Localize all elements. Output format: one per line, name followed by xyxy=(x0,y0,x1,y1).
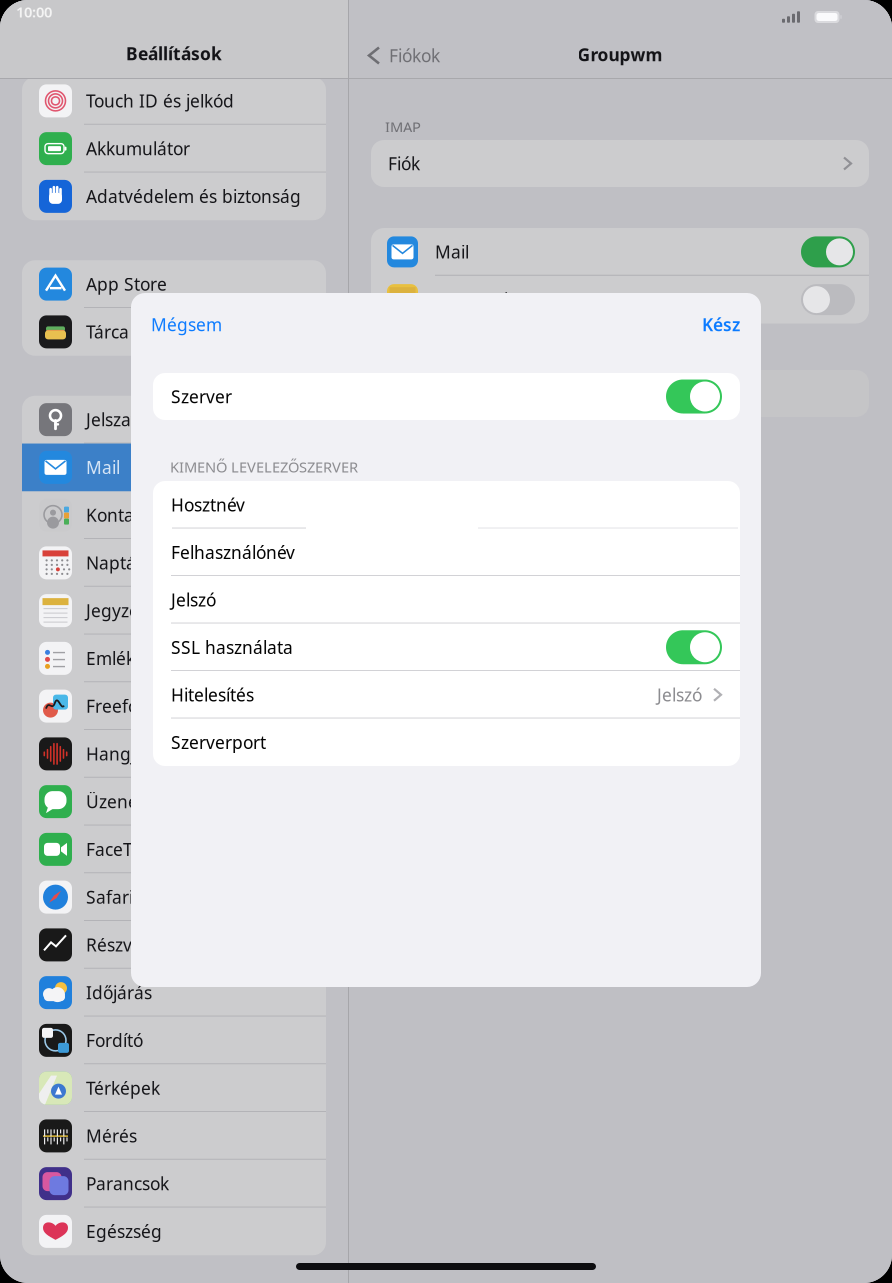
button[interactable]: Emlékeztetők xyxy=(22,634,326,682)
button[interactable]: Fiókok xyxy=(368,38,440,73)
button[interactable]: Parancsok xyxy=(22,1160,326,1208)
button[interactable]: Mérés xyxy=(22,1112,326,1160)
staticText: Jegyzetek xyxy=(86,599,164,622)
button[interactable]: Mégsem xyxy=(148,304,225,345)
staticText: KIMENŐ LEVELEZŐSZERVER xyxy=(170,457,358,476)
staticText: Hangjegyzetek xyxy=(86,742,208,765)
staticText: Szerver xyxy=(171,385,232,408)
staticText: Akkumulátor xyxy=(86,137,190,160)
staticText: Fiók xyxy=(388,152,420,175)
staticText: Beállítások xyxy=(126,42,222,65)
button[interactable]: Kapcsoló xyxy=(666,379,722,413)
staticText: Touch ID és jelkód xyxy=(86,89,234,112)
staticText: IMAP xyxy=(385,117,421,136)
button[interactable]: FaceTime xyxy=(22,825,326,873)
staticText: Jelszó xyxy=(657,683,702,706)
staticText: Jelszavak xyxy=(86,408,159,431)
button[interactable]: Naptár xyxy=(22,539,326,587)
staticText: FaceTime xyxy=(86,838,163,861)
staticText: Üzenetek xyxy=(86,790,163,813)
staticText: Egészség xyxy=(86,1220,162,1243)
staticText: Mail xyxy=(435,240,469,263)
button[interactable]: Touch ID és jelkód xyxy=(22,77,326,125)
button[interactable]: App Store xyxy=(22,260,326,308)
staticText: Parancsok xyxy=(86,1172,169,1195)
button[interactable]: Fordító xyxy=(22,1016,326,1064)
button[interactable]: Jelszavak xyxy=(22,396,326,444)
staticText: Felhasználónév xyxy=(171,541,295,564)
staticText: App Store xyxy=(86,273,167,296)
button[interactable]: Tárca xyxy=(22,308,326,356)
staticText: Jelszó xyxy=(171,588,216,611)
staticText: Részvények xyxy=(86,933,181,956)
staticText: Emlékeztetők xyxy=(86,647,194,670)
staticText: Szerverport xyxy=(171,731,266,754)
staticText: Adatvédelem és biztonság xyxy=(86,185,301,208)
staticText: Térképek xyxy=(86,1077,160,1100)
staticText: Safari xyxy=(86,886,133,909)
button[interactable]: Freeform xyxy=(22,682,326,730)
staticText: Időjárás xyxy=(86,981,152,1004)
button[interactable]: Mail xyxy=(22,443,326,491)
button[interactable]: Adatvédelem és biztonság xyxy=(22,172,326,220)
staticText: Hitelesítés xyxy=(171,683,254,706)
button[interactable]: Üzenetek xyxy=(22,778,326,826)
staticText: Hosztnév xyxy=(171,493,245,516)
button[interactable]: Részvények xyxy=(22,921,326,969)
button[interactable]: Hitelesítés xyxy=(153,671,740,718)
staticText: Mégsem xyxy=(151,313,222,336)
staticText: Fiókok xyxy=(389,44,440,67)
staticText: Mail xyxy=(86,456,120,479)
button[interactable]: Hangjegyzetek xyxy=(22,730,326,778)
staticText: Freeform xyxy=(86,695,161,718)
staticText: Fordító xyxy=(86,1029,143,1052)
staticText: Groupwm xyxy=(577,43,662,66)
staticText: SSL használata xyxy=(171,636,293,659)
button[interactable]: Kontaktok xyxy=(22,491,326,539)
button[interactable]: Térképek xyxy=(22,1064,326,1112)
button[interactable]: Egészség xyxy=(22,1207,326,1255)
staticText: 10:00 xyxy=(16,2,52,21)
staticText: Mérés xyxy=(86,1124,137,1147)
button[interactable]: Kész xyxy=(699,304,743,345)
button[interactable]: Safari xyxy=(22,873,326,921)
button[interactable]: Jegyzetek xyxy=(22,587,326,635)
staticText: Jegyzetek xyxy=(435,288,513,311)
staticText: Tárca xyxy=(86,320,129,343)
button[interactable]: Akkumulátor xyxy=(22,125,326,173)
button[interactable]: Időjárás xyxy=(22,969,326,1017)
staticText: Naptár xyxy=(86,551,143,574)
staticText: Kontaktok xyxy=(86,504,168,527)
staticText: Kész xyxy=(702,313,740,336)
button[interactable]: Kapcsoló xyxy=(666,630,722,664)
